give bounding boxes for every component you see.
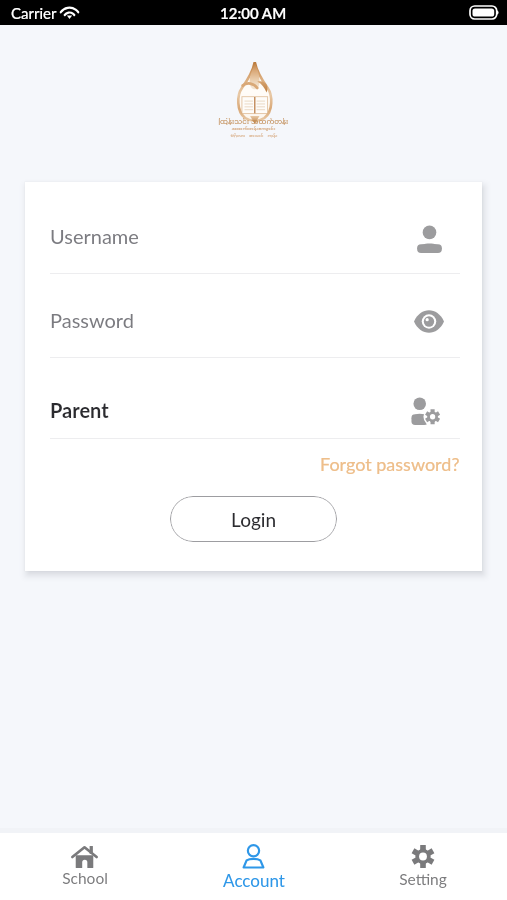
button[interactable]: Login <box>170 496 337 542</box>
staticText: Account <box>223 870 285 890</box>
button[interactable] <box>25 182 482 273</box>
staticText: ထြန်းသင်း အထက်တန်း <box>218 118 289 125</box>
staticText: မင်္ဂလာ စာသင် ကုန်း <box>230 133 278 138</box>
button[interactable] <box>25 273 482 357</box>
staticText: Password <box>50 308 134 332</box>
staticText: အထက်တန်းကျောင်း <box>231 126 276 131</box>
staticText: Parent <box>50 398 109 422</box>
button[interactable]: Show password <box>406 302 452 341</box>
staticText: Setting <box>399 870 447 889</box>
staticText: Carrier <box>11 4 57 22</box>
button[interactable] <box>25 357 482 438</box>
staticText: Username <box>50 224 139 248</box>
button[interactable]: Username <box>407 216 452 261</box>
button[interactable]: School <box>0 833 169 900</box>
button[interactable]: Choose role <box>400 387 449 433</box>
staticText: School <box>62 869 108 888</box>
button[interactable]: Setting <box>338 833 507 900</box>
staticText: Forgot password? <box>320 453 460 475</box>
staticText: 12:00 AM <box>220 4 287 22</box>
button[interactable]: Account <box>169 833 338 900</box>
staticText: Login <box>231 508 277 531</box>
